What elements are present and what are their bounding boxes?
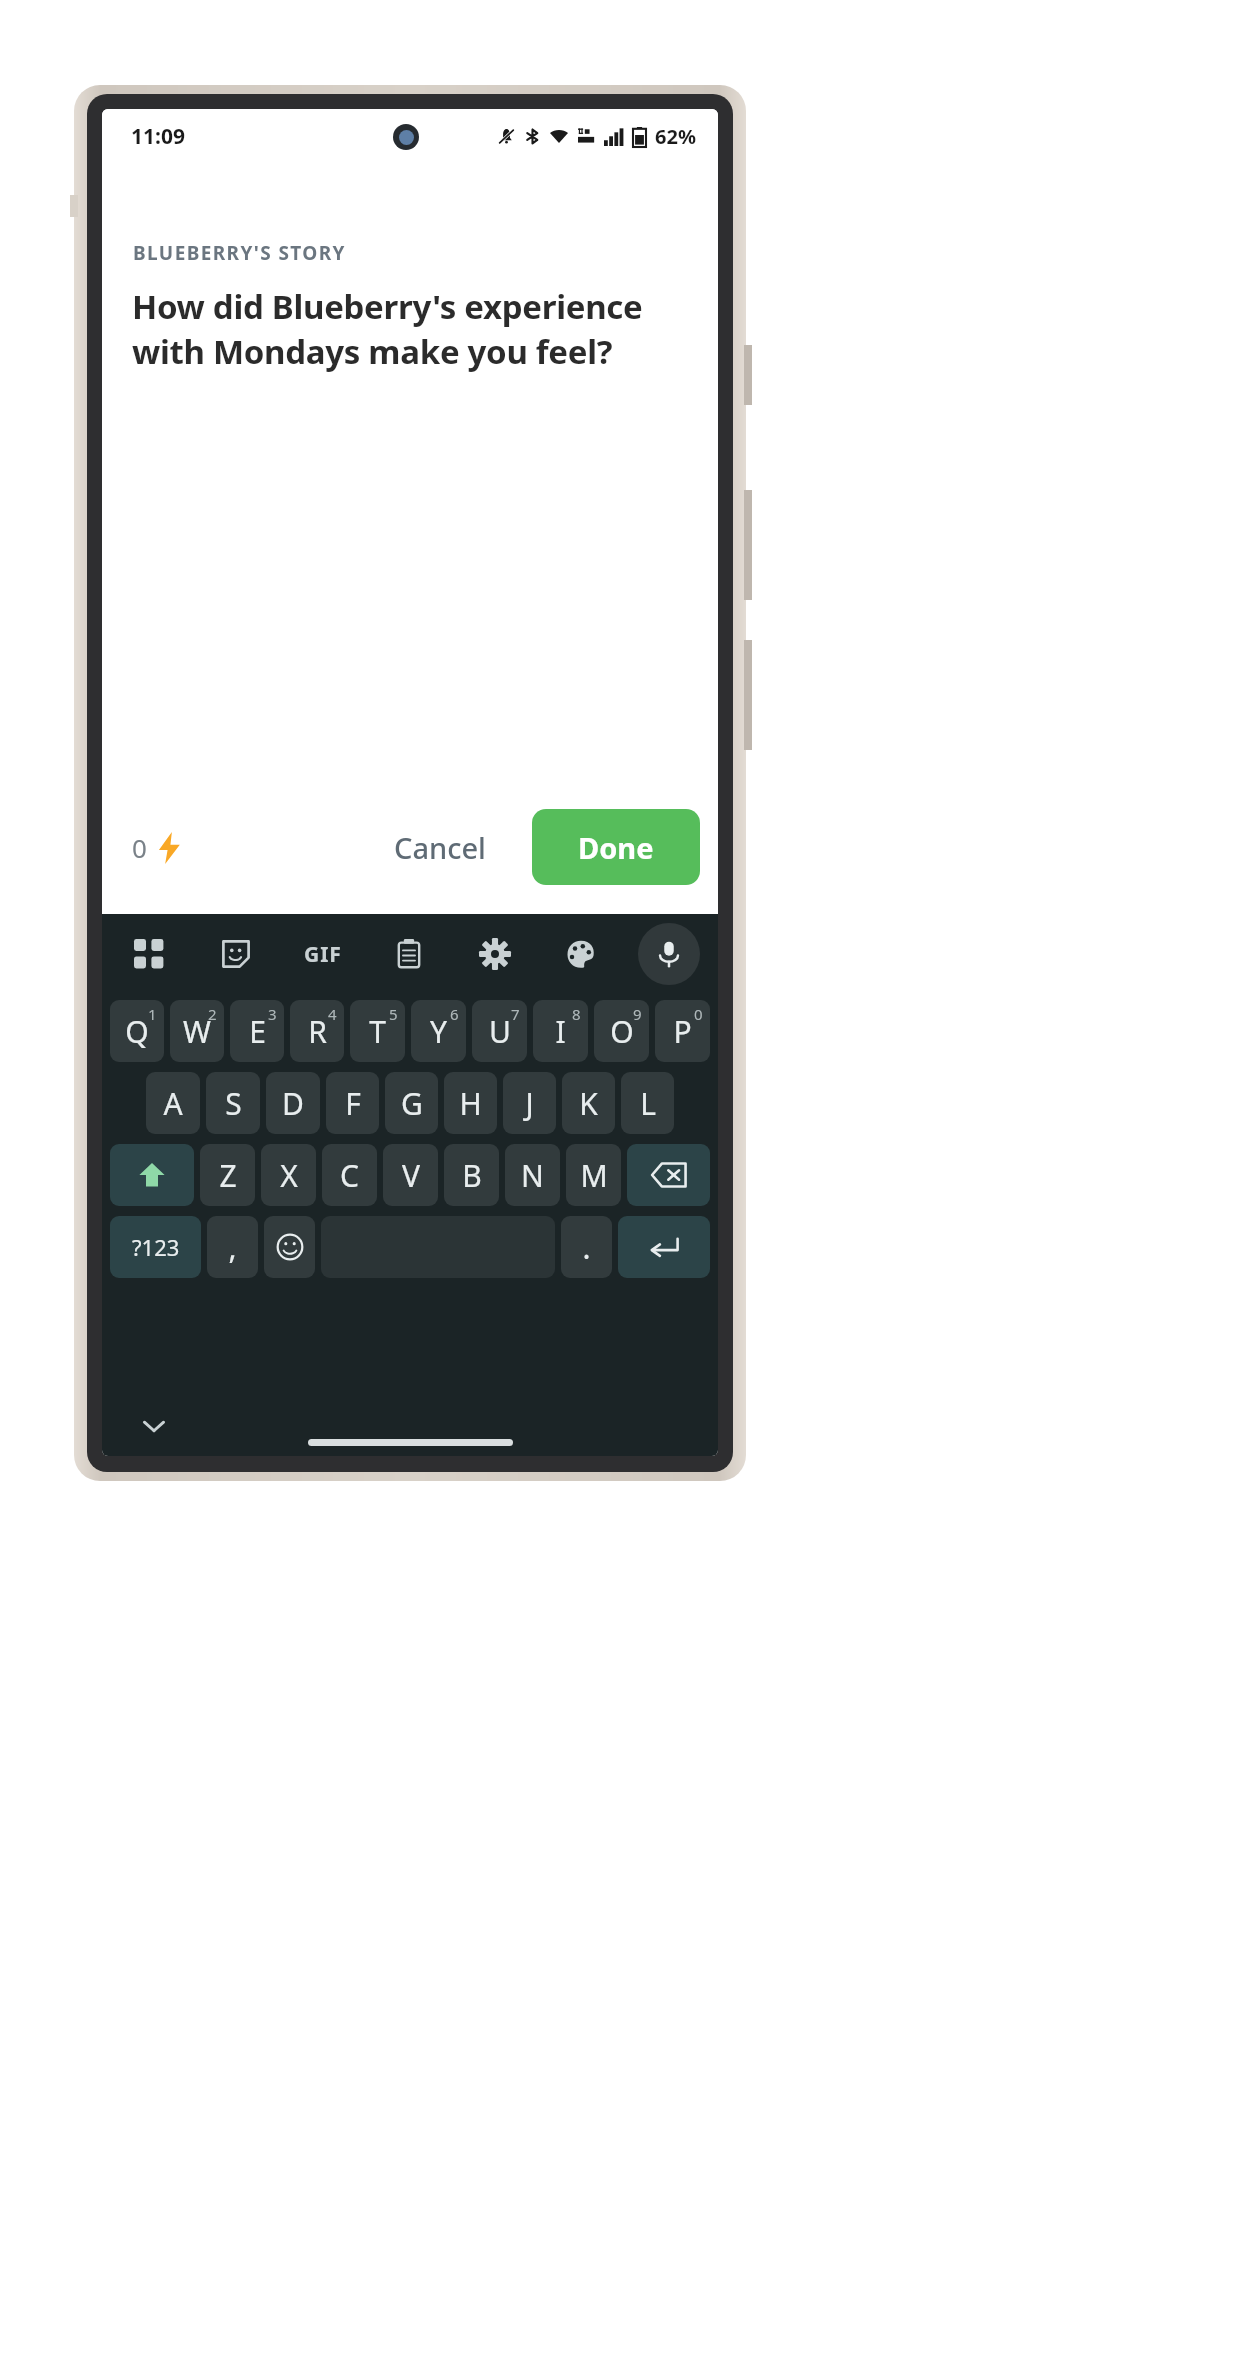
staticText: Y [430,1011,447,1052]
staticText: 2 [208,1004,217,1024]
staticText: Q [125,1011,149,1052]
staticText: X [280,1155,298,1196]
staticText: F [345,1083,361,1124]
button[interactable]: U [472,1000,527,1062]
button[interactable]: T [350,1000,405,1062]
staticText: V [402,1155,420,1196]
button[interactable]: K [562,1072,615,1134]
button[interactable]: E [230,1000,284,1062]
button[interactable]: B [444,1144,499,1206]
staticText: D [282,1083,304,1124]
staticText: U [489,1011,511,1052]
button[interactable]: Stickers [207,925,265,983]
staticText: G [401,1083,423,1124]
button[interactable]: ?123 [110,1216,201,1278]
staticText: 1 [148,1004,157,1024]
staticText: Done [578,828,654,867]
staticText: R [308,1011,327,1052]
button[interactable]: D [266,1072,320,1134]
button[interactable]: P [655,1000,710,1062]
button[interactable]: . [561,1216,612,1278]
staticText: ?123 [132,1232,180,1262]
staticText: E [249,1011,266,1052]
staticText: 8 [572,1004,581,1024]
staticText: 11:09 [131,122,185,151]
staticText: N [521,1155,544,1196]
button[interactable]: Y [411,1000,466,1062]
staticText: P [673,1011,692,1052]
button[interactable]: N [505,1144,560,1206]
button[interactable]: , [207,1216,258,1278]
button[interactable]: Z [200,1144,255,1206]
button[interactable]: Emoji [264,1216,315,1278]
staticText: B [462,1155,482,1196]
button[interactable]: H [444,1072,497,1134]
staticText: M [580,1155,608,1196]
button[interactable]: M [566,1144,621,1206]
staticText: L [640,1083,656,1124]
button[interactable]: W [170,1000,224,1062]
staticText: BLUEBERRY'S STORY [133,240,346,266]
staticText: GIF [304,940,342,969]
button[interactable]: V [383,1144,438,1206]
button[interactable]: Backspace [627,1144,710,1206]
button[interactable]: Shift [110,1144,194,1206]
button[interactable]: O [594,1000,649,1062]
button[interactable]: Enter [618,1216,710,1278]
staticText: 7 [511,1004,520,1024]
button[interactable]: Cancel [376,816,504,879]
staticText: S [225,1083,242,1124]
button[interactable]: C [322,1144,377,1206]
button[interactable]: GIF [294,925,352,983]
staticText: 5 [389,1004,398,1024]
staticText: 0 [694,1004,703,1024]
button[interactable]: Themes [552,925,610,983]
staticText: O [610,1011,634,1052]
button[interactable]: J [503,1072,556,1134]
button[interactable]: R [290,1000,344,1062]
staticText: J [525,1083,534,1124]
staticText: 9 [633,1004,642,1024]
button[interactable]: Apps [120,925,178,983]
button[interactable]: Voice input [638,923,700,985]
button[interactable]: G [385,1072,438,1134]
staticText: W [183,1011,211,1052]
staticText: H [459,1083,482,1124]
button[interactable]: Q [110,1000,164,1062]
button[interactable]: A [146,1072,200,1134]
staticText: Z [219,1155,237,1196]
button[interactable]: F [326,1072,379,1134]
staticText: . [582,1227,591,1268]
staticText: 6 [450,1004,459,1024]
button[interactable]: Settings [466,925,524,983]
staticText: 3 [268,1004,277,1024]
staticText: How did Blueberry's experience with Mond… [132,284,678,374]
staticText: C [340,1155,359,1196]
button[interactable]: Hide keyboard [132,1404,176,1448]
staticText: 4 [328,1004,337,1024]
button[interactable]: Done [532,809,700,885]
staticText: K [579,1083,598,1124]
staticText: , [228,1227,237,1268]
button[interactable]: S [206,1072,260,1134]
staticText: 0 [132,830,147,865]
staticText: 62% [655,123,696,150]
staticText: A [163,1083,183,1124]
button[interactable]: Clipboard [380,925,438,983]
button[interactable]: I [533,1000,588,1062]
staticText: I [555,1011,566,1052]
staticText: Cancel [394,828,486,867]
button[interactable]: X [261,1144,316,1206]
button[interactable]: L [621,1072,674,1134]
staticText: T [369,1011,386,1052]
